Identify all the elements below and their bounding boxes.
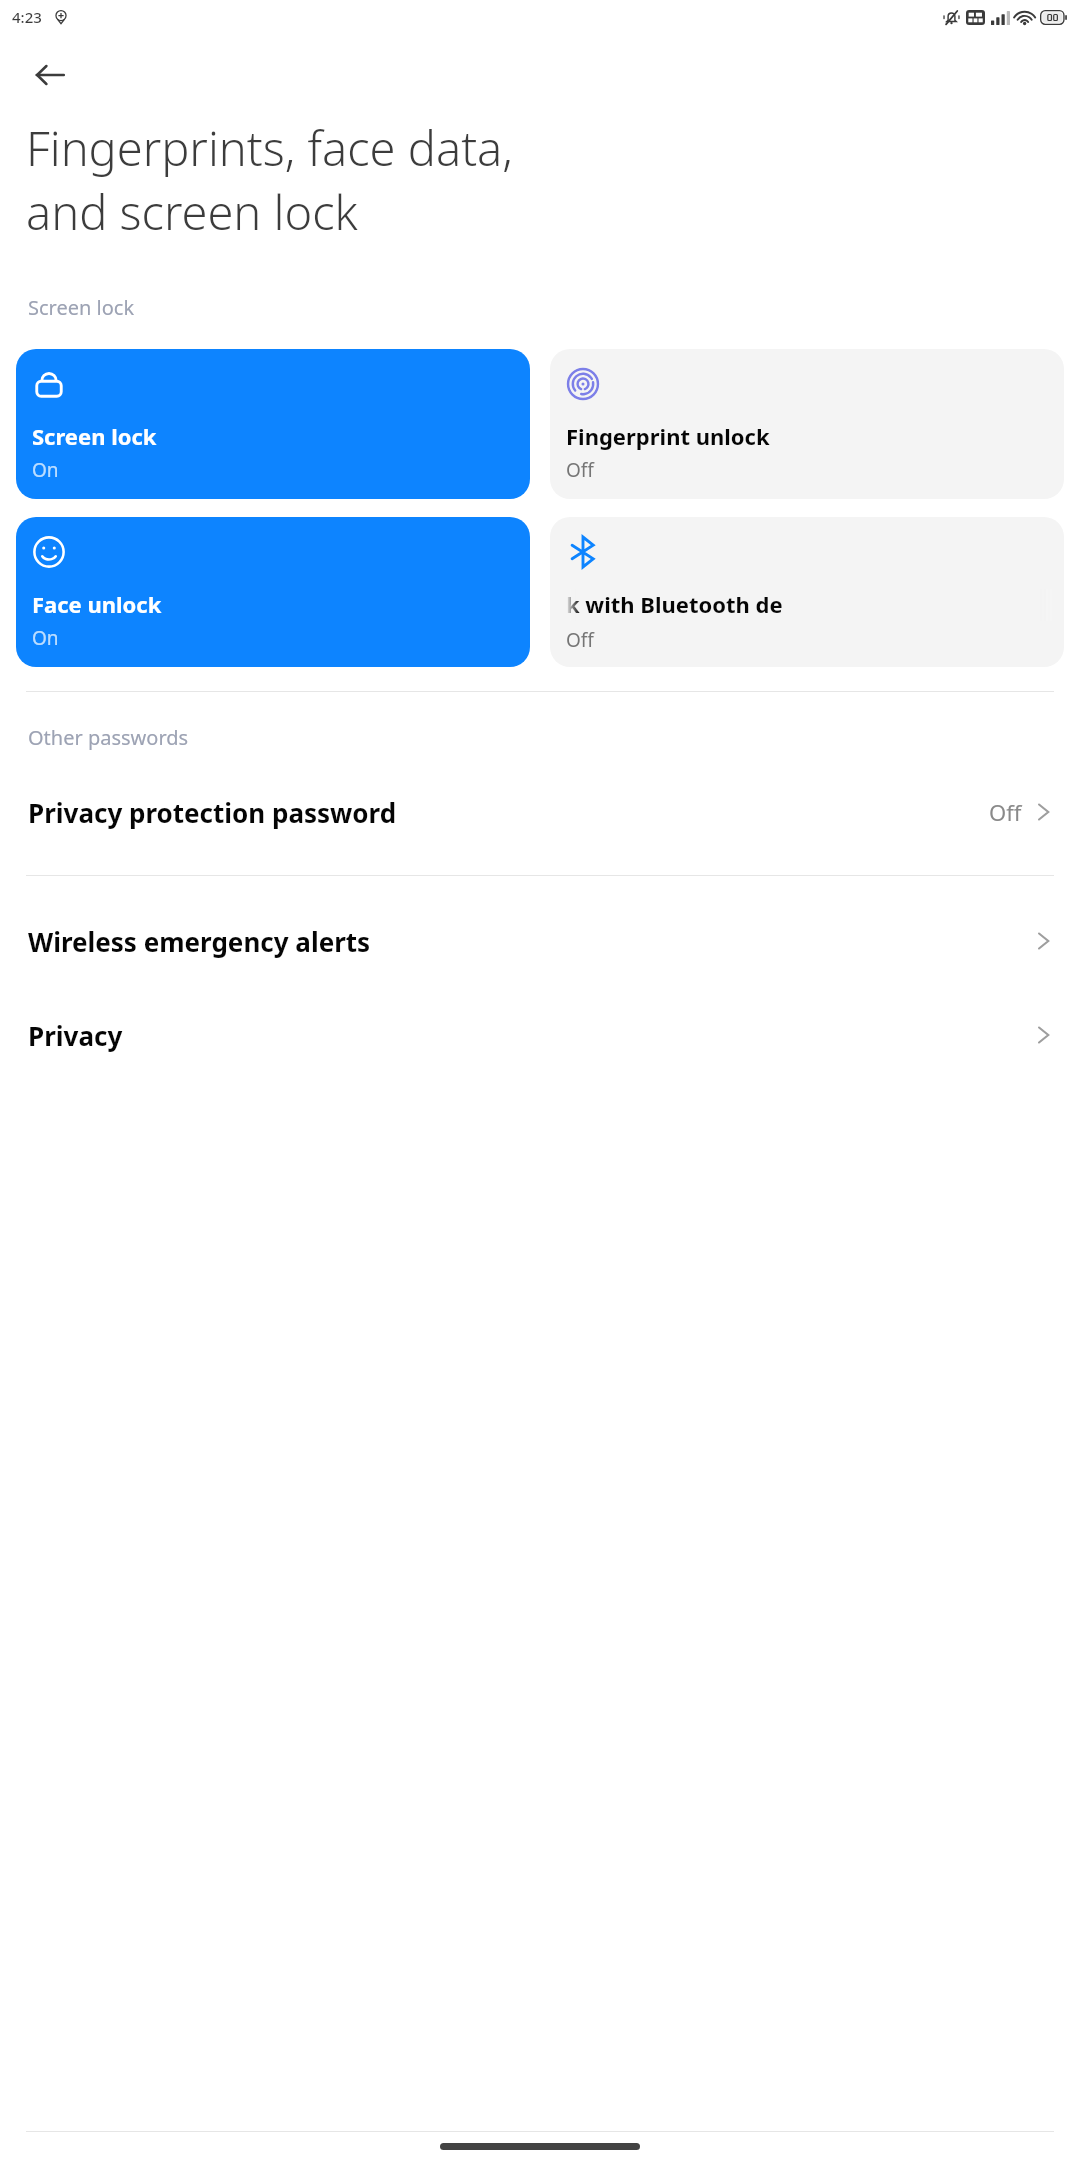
- staticText: 4:23: [12, 7, 42, 27]
- button[interactable]: Privacy: [0, 996, 1080, 1074]
- staticText: k with Bluetooth de: [566, 589, 783, 619]
- staticText: Privacy protection password: [28, 795, 989, 830]
- staticText: Off: [989, 797, 1022, 827]
- staticText: On: [32, 625, 59, 651]
- button[interactable]: Wireless emergency alerts: [0, 902, 1080, 980]
- staticText: Fingerprint unlock: [566, 421, 770, 451]
- staticText: Screen lock: [32, 421, 157, 451]
- button[interactable]: Back: [22, 47, 78, 103]
- button[interactable]: Unlock with Bluetooth device: [550, 517, 1064, 667]
- staticText: Privacy: [28, 1018, 1032, 1053]
- staticText: On: [32, 457, 59, 483]
- button[interactable]: Fingerprint unlock: [550, 349, 1064, 499]
- staticText: Other passwords: [28, 724, 189, 751]
- staticText: Wireless emergency alerts: [28, 924, 1032, 959]
- staticText: Face unlock: [32, 589, 162, 619]
- button[interactable]: Privacy protection password: [0, 773, 1080, 851]
- button[interactable]: Screen lock: [16, 349, 530, 499]
- staticText: Off: [566, 627, 594, 653]
- button[interactable]: Face unlock: [16, 517, 530, 667]
- staticText: Screen lock: [28, 294, 135, 321]
- staticText: Off: [566, 457, 594, 483]
- staticText: Fingerprints, face data,: [26, 116, 513, 180]
- staticText: and screen lock: [26, 180, 358, 244]
